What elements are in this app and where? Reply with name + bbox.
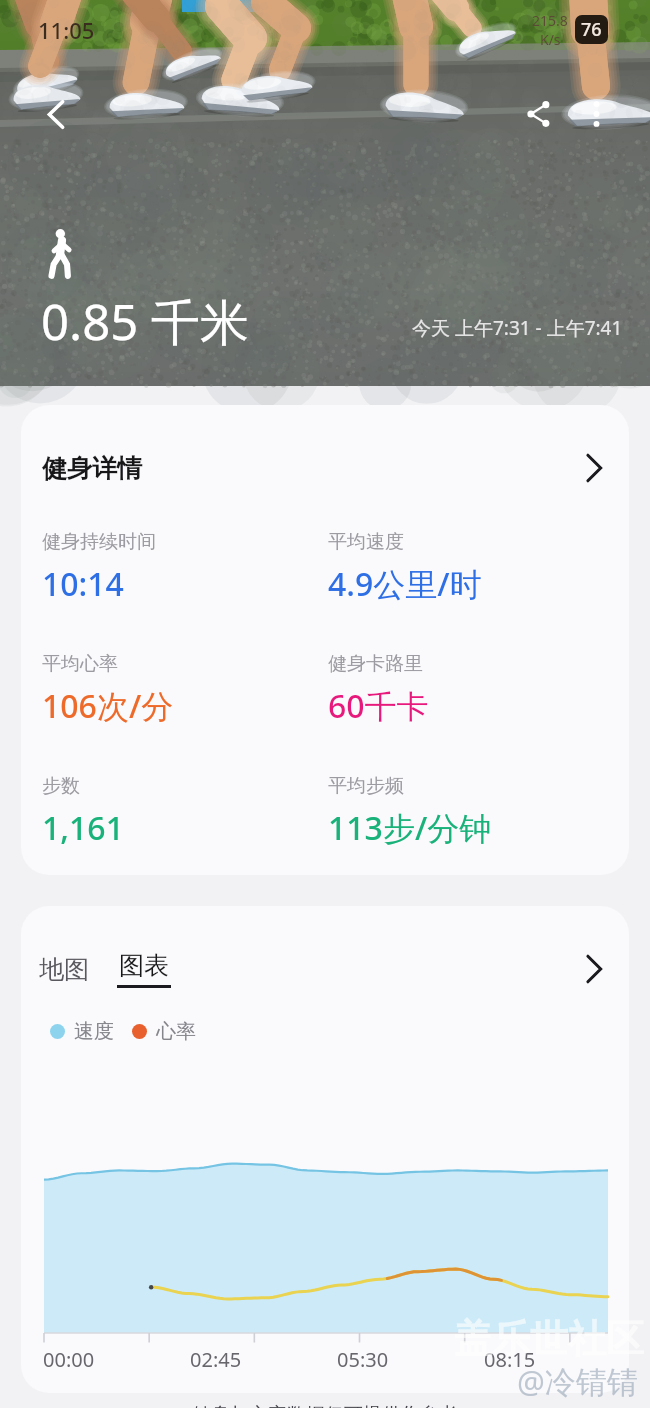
button[interactable]: More options	[576, 94, 616, 134]
button[interactable]: 地图	[39, 950, 89, 989]
button[interactable]: 图表	[117, 950, 171, 988]
staticText: 心率	[156, 1019, 196, 1044]
button[interactable]: Back	[32, 91, 78, 137]
staticText: 速度	[74, 1019, 114, 1044]
staticText: 76	[581, 17, 602, 42]
staticText: 盖乐世社区	[454, 1315, 644, 1363]
staticText: 10:14	[42, 562, 124, 606]
staticText: 图表	[119, 950, 169, 981]
staticText: K/s	[540, 30, 561, 49]
staticText: 11:05	[38, 15, 95, 45]
staticText: 地图	[39, 954, 89, 985]
staticText: 健身详情	[42, 453, 142, 484]
staticText: 60千卡	[328, 684, 429, 728]
staticText: 0.85 千米	[41, 288, 249, 355]
staticText: @冷锖锖	[517, 1360, 638, 1402]
staticText: 健身卡路里	[328, 652, 423, 676]
staticText: 平均速度	[328, 530, 404, 554]
staticText: 00:00	[43, 1346, 95, 1373]
staticText: 1,161	[42, 806, 124, 850]
staticText: 05:30	[337, 1346, 389, 1373]
staticText: 健身与心率数据仅可提供作参考	[192, 1403, 458, 1408]
staticText: 步数	[42, 774, 80, 798]
staticText: 今天 上午7:31 - 上午7:41	[412, 315, 623, 341]
staticText: 平均步频	[328, 774, 404, 798]
staticText: 健身持续时间	[42, 530, 156, 554]
button[interactable]: Open chart	[577, 953, 609, 985]
staticText: 02:45	[190, 1346, 242, 1373]
staticText: 106次/分	[42, 684, 174, 728]
button[interactable]: Share	[516, 92, 560, 136]
staticText: 4.9公里/时	[328, 562, 482, 606]
button[interactable]: 健身详情	[21, 405, 629, 875]
staticText: 113步/分钟	[328, 806, 492, 850]
staticText: 08:15	[484, 1346, 536, 1373]
staticText: 215.8	[532, 11, 568, 30]
staticText: 平均心率	[42, 652, 118, 676]
